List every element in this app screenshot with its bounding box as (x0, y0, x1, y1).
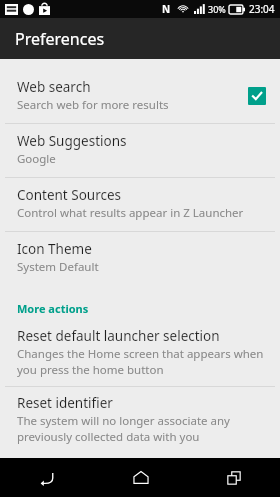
button[interactable]: Web search (0, 70, 280, 123)
button[interactable]: Icon Theme (0, 232, 280, 285)
staticText: N (162, 2, 171, 16)
staticText: 23:04 (249, 2, 275, 16)
staticText: 30% (208, 3, 226, 15)
staticText: Content Sources (17, 186, 122, 204)
staticText: Search web for more results (17, 97, 169, 113)
staticText: More actions (17, 301, 89, 316)
button[interactable]: Web Suggestions (0, 124, 280, 177)
button[interactable]: Content Sources (0, 178, 280, 231)
button[interactable]: Back (0, 458, 94, 497)
staticText: Web search (17, 78, 91, 96)
staticText: Preferences (15, 28, 105, 50)
staticText: Reset identifier (17, 394, 113, 412)
button[interactable]: Web search enabled (248, 87, 266, 105)
staticText: Control what results appear in Z Launche… (17, 205, 244, 221)
staticText: Changes the Home screen that appears whe… (17, 346, 266, 377)
button[interactable]: Reset default launcher selection (0, 320, 280, 386)
staticText: Google (17, 151, 56, 167)
button[interactable]: Recents (187, 458, 280, 497)
staticText: System Default (17, 259, 99, 275)
staticText: Icon Theme (17, 240, 92, 258)
button[interactable]: Home (94, 458, 187, 497)
button[interactable]: Reset identifier (0, 387, 280, 453)
staticText: The system will no longer associate any … (17, 413, 266, 444)
staticText: Web Suggestions (17, 132, 127, 150)
staticText: Reset default launcher selection (17, 327, 220, 345)
